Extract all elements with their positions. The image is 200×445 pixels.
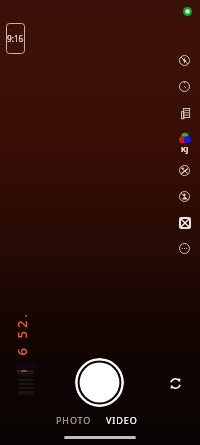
staticText: KJ bbox=[181, 144, 189, 154]
button[interactable]: Colour filter bbox=[179, 132, 191, 154]
button[interactable]: Timer bbox=[179, 81, 190, 92]
button[interactable]: Close bbox=[179, 217, 191, 229]
staticText: VIDEO bbox=[106, 414, 138, 426]
button[interactable]: Effects off bbox=[179, 165, 190, 176]
button[interactable]: PHOTO bbox=[56, 412, 92, 428]
button[interactable]: Take photo bbox=[75, 358, 124, 407]
button[interactable]: Portrait off bbox=[179, 191, 190, 202]
staticText: 9:16 bbox=[7, 33, 24, 44]
button[interactable]: Switch camera bbox=[165, 373, 186, 394]
button[interactable]: Flash off bbox=[179, 55, 190, 66]
button[interactable]: Settings bbox=[180, 107, 190, 119]
button[interactable]: VIDEO bbox=[106, 412, 138, 428]
button[interactable]: Gallery bbox=[15, 363, 37, 396]
button[interactable]: More options bbox=[179, 243, 190, 254]
staticText: PHOTO bbox=[56, 414, 92, 426]
staticText: 6 52. bbox=[12, 310, 30, 355]
button[interactable]: 9:16 bbox=[6, 23, 25, 54]
